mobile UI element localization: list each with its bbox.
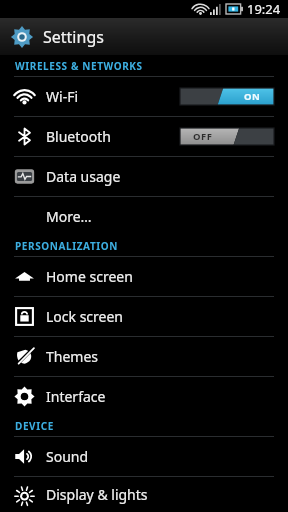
staticText: ON [244, 90, 261, 103]
staticText: Wi-Fi [46, 87, 79, 106]
button[interactable]: Lock screen [0, 297, 288, 336]
staticText: PERSONALIZATION [15, 239, 119, 253]
staticText: Settings [43, 26, 104, 48]
staticText: Interface [46, 387, 106, 406]
staticText: OFF [193, 130, 213, 143]
staticText: Bluetooth [46, 127, 111, 146]
staticText: Lock screen [46, 307, 124, 326]
staticText: DEVICE [15, 419, 54, 433]
button[interactable]: Data usage [0, 157, 288, 196]
button[interactable]: Display & lights [0, 477, 288, 512]
button[interactable]: Home screen [0, 257, 288, 296]
staticText: Home screen [46, 267, 133, 286]
button[interactable]: Turn on [180, 128, 274, 145]
staticText: 19:24 [247, 0, 281, 18]
button[interactable]: Themes [0, 337, 288, 376]
button[interactable]: Wi-Fi [0, 77, 288, 116]
staticText: Themes [46, 347, 99, 366]
button[interactable]: More… [0, 197, 288, 236]
button[interactable]: Turn off [180, 88, 274, 105]
staticText: Data usage [46, 167, 121, 186]
staticText: Sound [46, 447, 89, 466]
staticText: More… [46, 207, 92, 226]
staticText: WIRELESS & NETWORKS [15, 59, 143, 73]
button[interactable]: Bluetooth [0, 117, 288, 156]
button[interactable]: Interface [0, 377, 288, 416]
staticText: Display & lights [46, 485, 148, 504]
button[interactable]: Sound [0, 437, 288, 476]
